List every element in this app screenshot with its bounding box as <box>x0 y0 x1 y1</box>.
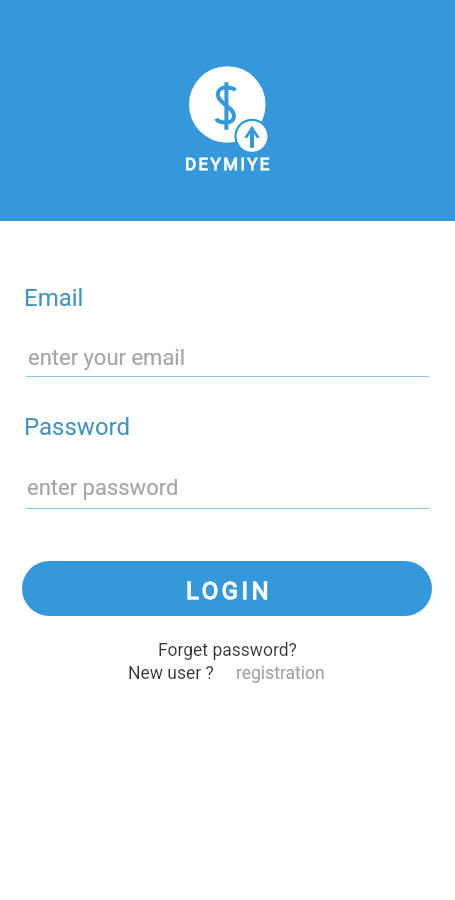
staticText: New user ? <box>128 663 214 684</box>
other: DEYMIYE logo <box>0 0 455 221</box>
button[interactable]: enter your email <box>26 335 429 377</box>
button[interactable]: Forget password? <box>156 640 299 661</box>
staticText: Email <box>24 284 84 312</box>
staticText: DEYMIYE <box>185 154 272 174</box>
staticText: LOGIN <box>186 577 273 605</box>
staticText: Password <box>24 413 131 441</box>
staticText: enter your email <box>28 345 186 371</box>
button[interactable]: enter password <box>26 465 429 509</box>
button[interactable]: LOGIN <box>22 561 432 616</box>
button[interactable]: registration <box>234 663 327 684</box>
staticText: enter password <box>27 475 179 501</box>
